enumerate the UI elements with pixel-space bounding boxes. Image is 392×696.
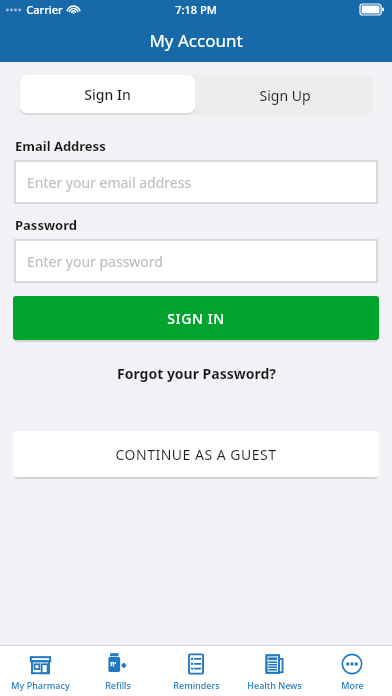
staticText: More (341, 679, 364, 691)
button[interactable]: Enter your password (15, 240, 377, 282)
other: Health News (263, 653, 286, 676)
staticText: My Account (149, 29, 243, 52)
other: Refills (106, 652, 130, 676)
staticText: Forgot your Password? (117, 364, 276, 383)
other: My Pharmacy (29, 653, 52, 676)
staticText: Health News (247, 679, 302, 691)
other: More (341, 653, 363, 675)
staticText: CONTINUE AS A GUEST (115, 445, 277, 464)
staticText: Sign In (84, 85, 131, 104)
button[interactable]: Health News (236, 646, 312, 696)
button[interactable]: My Pharmacy (2, 646, 78, 696)
staticText: SIGN IN (167, 309, 225, 328)
button[interactable]: Forgot your Password? (107, 360, 286, 387)
button[interactable]: Enter your email address (15, 161, 377, 203)
button[interactable] (19, 75, 196, 115)
button[interactable]: Refills (80, 646, 156, 696)
staticText: My Pharmacy (11, 679, 70, 691)
staticText: Refills (105, 679, 131, 691)
button[interactable]: CONTINUE AS A GUEST (13, 431, 379, 477)
other: Reminders (185, 653, 207, 675)
staticText: Reminders (173, 679, 220, 691)
staticText: Carrier (26, 2, 63, 17)
button[interactable]: More (314, 646, 390, 696)
staticText: Password (15, 216, 77, 234)
staticText: Enter your password (27, 252, 163, 271)
staticText: 7:18 PM (175, 2, 217, 17)
staticText: Sign Up (259, 86, 311, 105)
button[interactable]: Sign Up (196, 75, 373, 115)
button[interactable]: SIGN IN (13, 296, 379, 340)
button[interactable]: Reminders (158, 646, 234, 696)
staticText: Email Address (15, 137, 106, 155)
staticText: Enter your email address (27, 173, 192, 192)
button[interactable]: Sign In (20, 75, 195, 113)
